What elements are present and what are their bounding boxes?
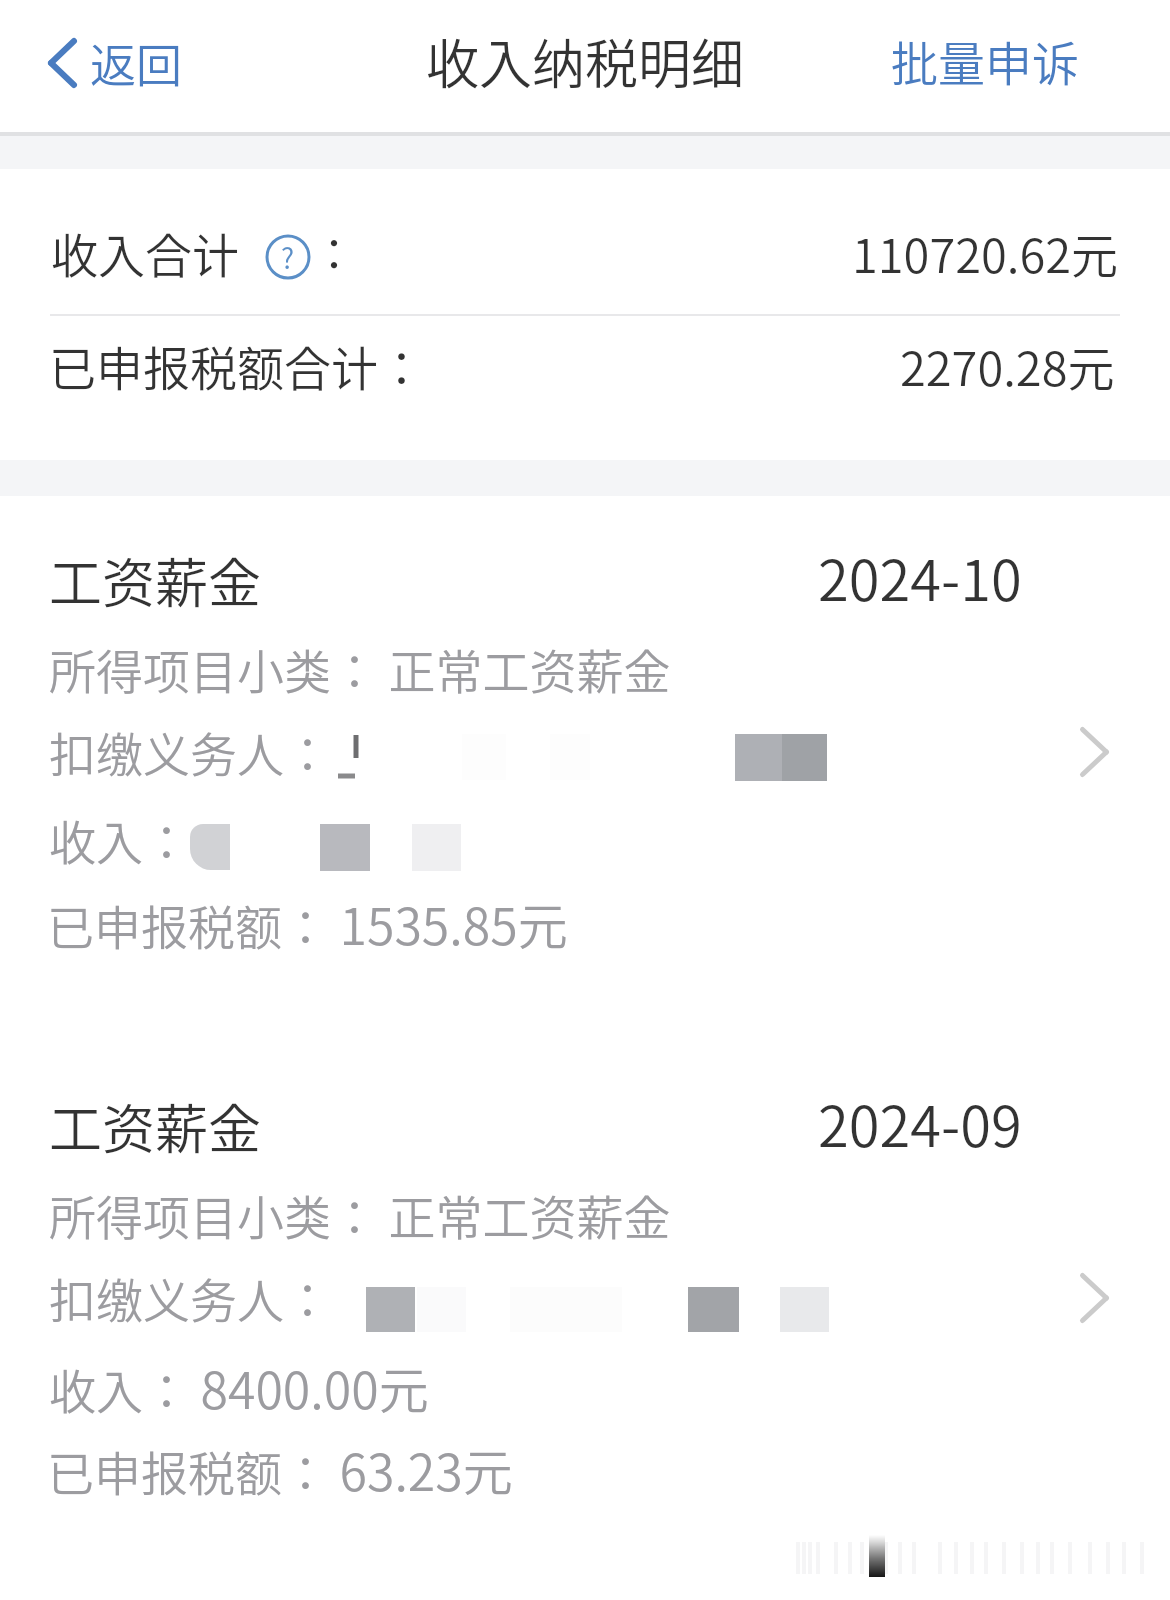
staticText: 所得项目小类： 正常工资薪金 <box>49 634 671 702</box>
staticText: ： <box>312 220 356 284</box>
button[interactable]: 收入合计说明 <box>266 235 310 279</box>
staticText: ? <box>281 237 295 278</box>
button[interactable]: 返回 <box>36 15 194 110</box>
staticText: 工资薪金 <box>49 542 261 619</box>
button[interactable]: 工资薪金 <box>0 496 1170 1042</box>
staticText: 2270.28元 <box>900 331 1115 399</box>
staticText: 收入： 8400.00元 <box>49 1351 429 1423</box>
staticText: 2024-10 <box>818 536 1022 617</box>
staticText: 收入合计 <box>51 218 239 286</box>
button[interactable]: 批量申诉 <box>879 12 1091 108</box>
staticText: 扣缴义务人： <box>49 717 331 785</box>
staticText: 收入纳税明细 <box>426 23 744 100</box>
staticText: 已申报税额合计： <box>49 331 425 399</box>
staticText: 所得项目小类： 正常工资薪金 <box>49 1180 671 1248</box>
staticText: 已申报税额： 1535.85元 <box>47 887 568 959</box>
staticText: 工资薪金 <box>49 1088 261 1165</box>
button[interactable]: 工资薪金 <box>0 1042 1170 1588</box>
staticText: 2024-09 <box>818 1082 1022 1163</box>
staticText: 收入： <box>49 805 190 873</box>
staticText: 已申报税额： 63.23元 <box>47 1433 513 1505</box>
staticText: 110720.62元 <box>852 218 1119 286</box>
staticText: 扣缴义务人： <box>49 1263 331 1331</box>
staticText: 返回 <box>90 29 182 96</box>
staticText: 批量申诉 <box>891 26 1079 94</box>
